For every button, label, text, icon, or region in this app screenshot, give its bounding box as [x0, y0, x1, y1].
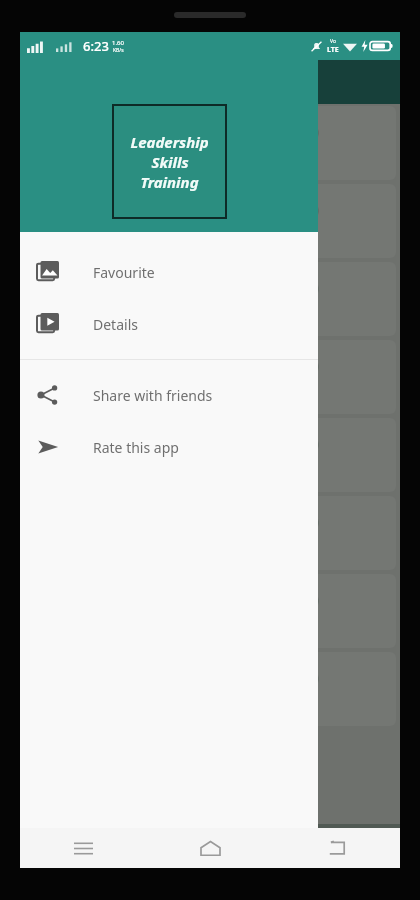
button[interactable]: Back	[317, 828, 357, 868]
staticText: Skills	[151, 152, 189, 172]
staticText: Favourite	[93, 263, 155, 282]
other: Details	[37, 313, 59, 335]
button[interactable]: Share with friends	[20, 369, 318, 421]
other: Rate this app	[37, 436, 59, 458]
staticText: Details	[93, 315, 138, 334]
staticText: Leadership	[130, 132, 209, 152]
button[interactable]: Favourite	[20, 246, 318, 298]
staticText: Vo	[330, 38, 336, 45]
button[interactable]: Rate this app	[20, 421, 318, 473]
other: Share with friends	[37, 384, 59, 406]
staticText: KB/s	[113, 47, 124, 54]
button[interactable]: Home	[190, 828, 230, 868]
staticText: Rate this app	[93, 438, 179, 457]
staticText: Training	[140, 172, 199, 192]
other: Favourite	[37, 261, 59, 283]
button[interactable]: Recents	[63, 828, 103, 868]
staticText: 1.60	[112, 39, 124, 47]
button[interactable]: Details	[20, 298, 318, 350]
staticText: LTE	[327, 45, 339, 55]
staticText: 6:23	[83, 37, 109, 55]
staticText: Share with friends	[93, 386, 213, 405]
